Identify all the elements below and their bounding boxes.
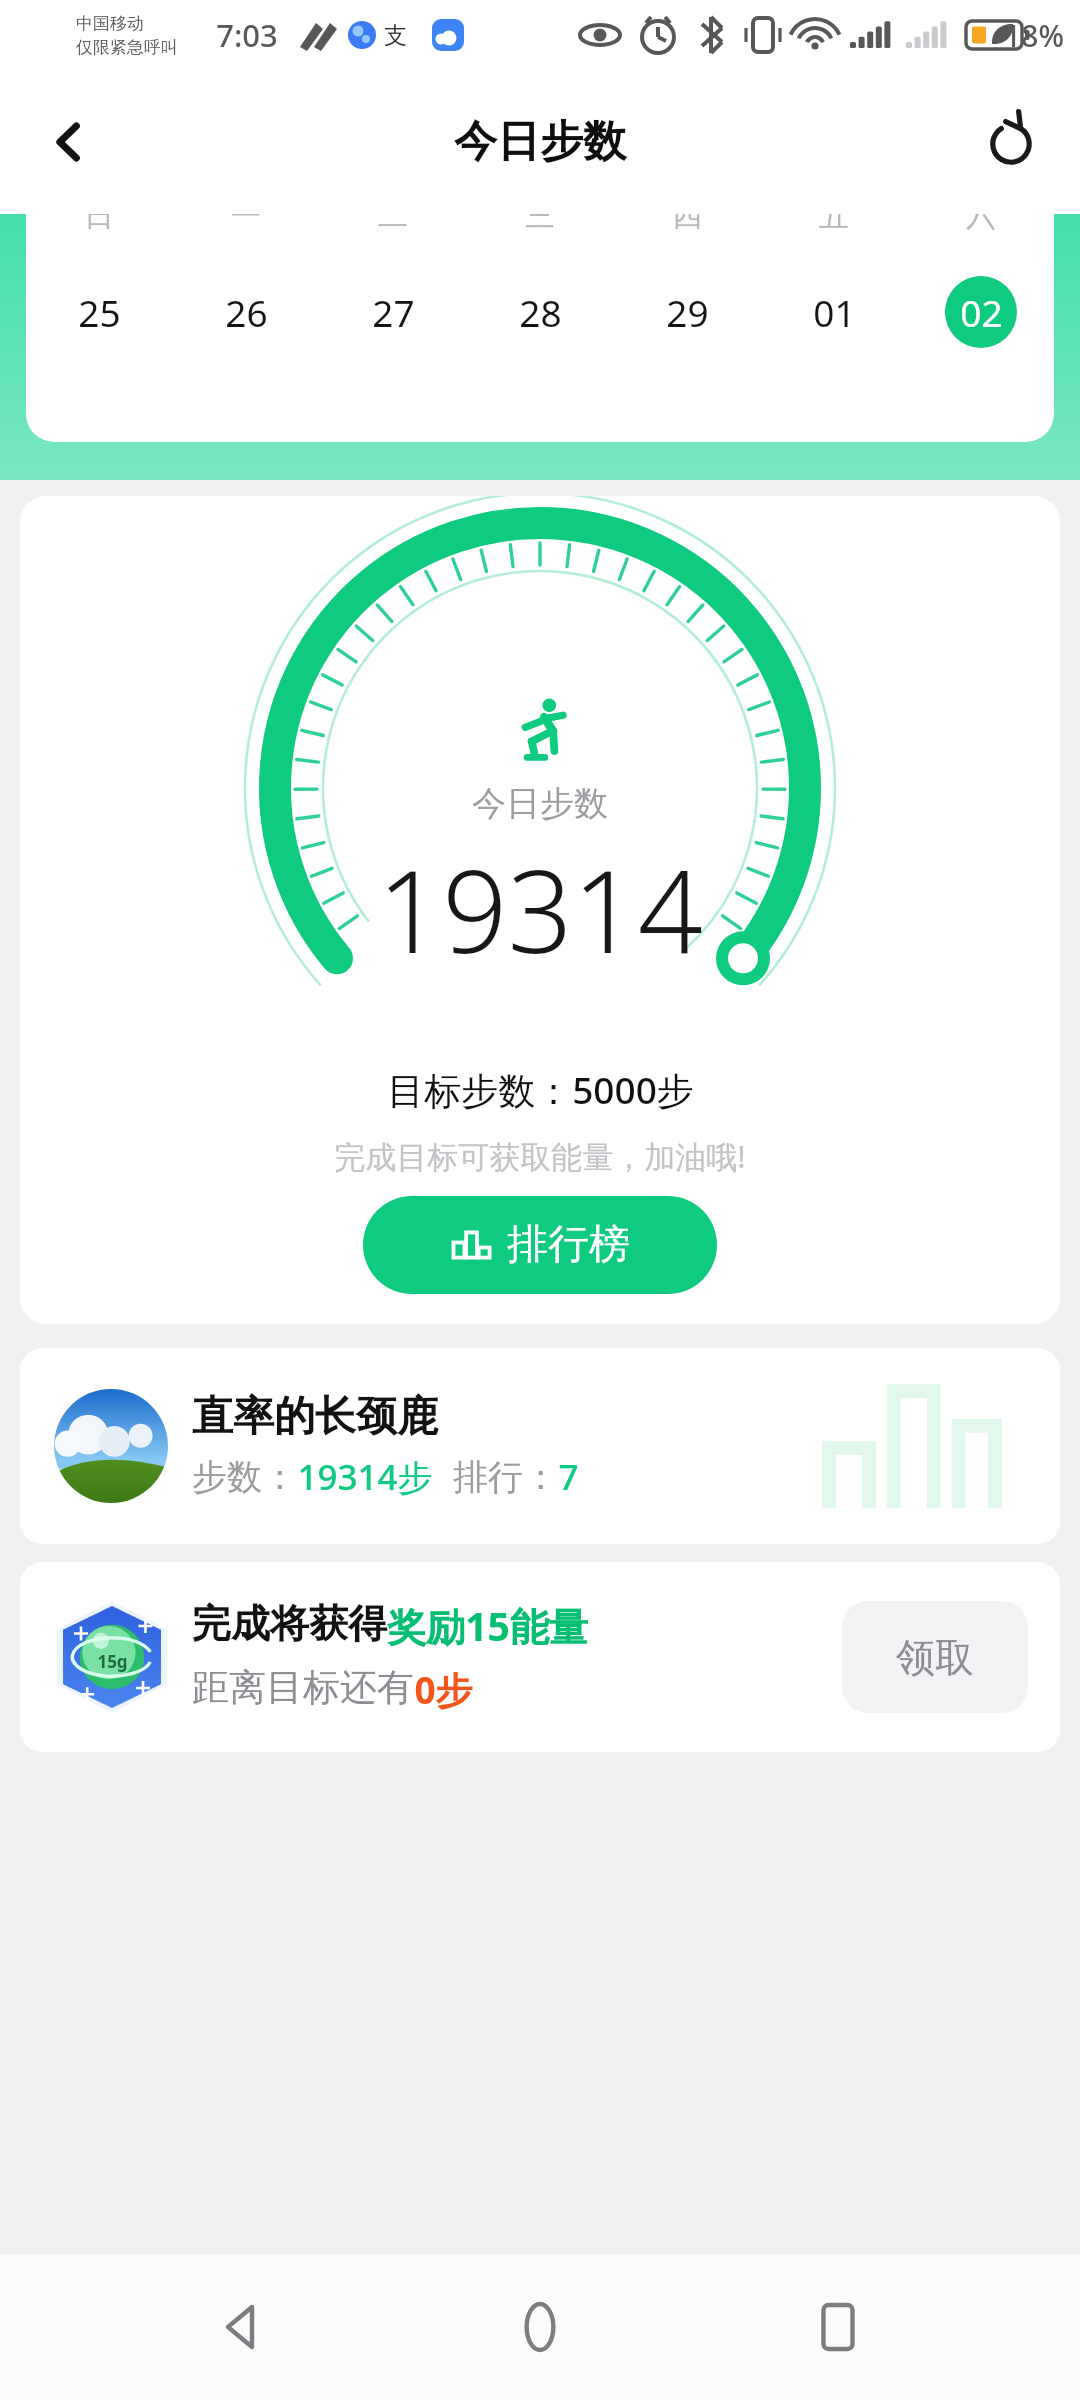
staticText: 29 [666,287,709,337]
staticText: 排行： [453,1455,558,1499]
staticText: 02 [960,287,1003,337]
staticText: 26 [225,287,268,337]
button[interactable]: 02 [907,276,1054,348]
staticText: 直率的长颈鹿 [192,1391,438,1443]
staticText: 完成将获得 [192,1599,387,1648]
staticText: 二 [378,214,408,235]
button[interactable]: 01 [760,276,907,348]
staticText: 排行榜 [507,1219,630,1271]
button[interactable]: 最近任务 [782,2271,894,2383]
button[interactable]: 27 [319,276,466,348]
button[interactable]: 25 [26,276,172,348]
staticText: 仅限紧急呼叫 [76,37,178,58]
staticText: 18% [1004,15,1064,56]
staticText: 奖励15能量 [387,1599,588,1652]
staticText: 三 [525,214,555,235]
button[interactable]: 28 [466,276,613,348]
staticText: 7:03 [216,14,278,56]
staticText: 五 [819,214,849,235]
staticText: 日 [84,214,114,235]
button[interactable]: 返回 [26,99,112,185]
staticText: 领取 [896,1633,974,1682]
button[interactable]: 分享 [968,99,1054,185]
button[interactable]: 26 [172,276,319,348]
staticText: 完成目标可获取能量，加油哦! [334,1135,746,1177]
button[interactable]: 29 [613,276,760,348]
staticText: 一 [231,214,261,235]
button[interactable]: 直率的长颈鹿 [20,1348,1060,1544]
staticText: 六 [966,214,996,235]
button[interactable]: 主屏幕 [484,2271,596,2383]
staticText: 今日步数 [454,115,626,169]
staticText: 今日步数 [472,782,608,825]
staticText: 7 [558,1453,579,1501]
staticText: 距离目标还有 [192,1664,414,1711]
button[interactable]: 排行榜 [363,1196,717,1294]
button[interactable]: 领取 [842,1601,1028,1713]
staticText: 15g [97,1650,128,1673]
staticText: 01 [813,287,856,337]
staticText: 19314 [377,831,703,986]
staticText: 步数： [192,1455,297,1499]
staticText: 支 [384,21,407,50]
staticText: 中国移动 [76,13,144,34]
staticText: 目标步数：5000步 [387,1064,694,1115]
button[interactable]: 返回 [186,2271,298,2383]
staticText: 19314步 [297,1453,433,1501]
staticText: 28 [519,287,562,337]
staticText: 四 [672,214,702,235]
staticText: 25 [78,287,121,337]
staticText: 27 [372,287,415,337]
staticText: 0步 [414,1664,473,1715]
